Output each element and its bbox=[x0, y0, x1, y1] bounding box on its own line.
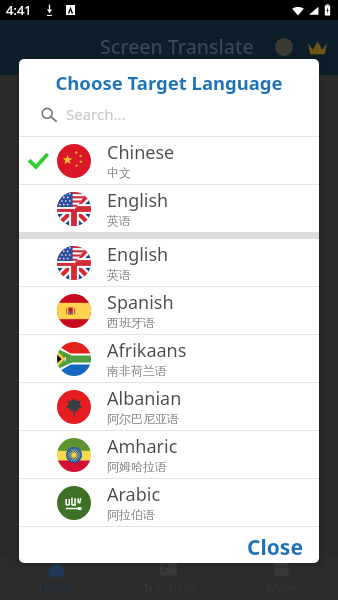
button[interactable]: Search... bbox=[19, 101, 319, 127]
staticText: 4:41 bbox=[6, 1, 32, 19]
button[interactable]: Chinese bbox=[19, 137, 319, 184]
button[interactable]: Home bbox=[0, 556, 112, 600]
staticText: Albanian bbox=[107, 386, 182, 411]
staticText: Home bbox=[39, 580, 74, 596]
staticText: 阿尔巴尼亚语 bbox=[107, 411, 179, 426]
button[interactable]: Help bbox=[267, 30, 301, 64]
staticText: Arabic bbox=[107, 482, 161, 507]
button[interactable]: More bbox=[225, 556, 338, 600]
staticText: 西班牙语 bbox=[107, 315, 155, 330]
staticText: 中文 bbox=[107, 165, 131, 180]
button[interactable]: Spanish bbox=[19, 287, 319, 334]
staticText: Screen Translate bbox=[100, 33, 254, 60]
staticText: Close bbox=[247, 533, 303, 557]
staticText: Spanish bbox=[107, 290, 174, 315]
button[interactable]: English bbox=[19, 185, 319, 232]
button[interactable]: Premium bbox=[301, 31, 333, 63]
staticText: Afrikaans bbox=[107, 338, 187, 363]
staticText: Amharic bbox=[107, 434, 178, 459]
staticText: English bbox=[107, 188, 169, 213]
button[interactable]: Close bbox=[231, 527, 319, 563]
staticText: 英语 bbox=[107, 267, 131, 282]
button[interactable]: Translate bbox=[112, 556, 225, 600]
button[interactable]: Albanian bbox=[19, 383, 319, 430]
staticText: Chinese bbox=[107, 140, 175, 165]
staticText: Choose Target Language bbox=[19, 70, 319, 95]
staticText: 英语 bbox=[107, 213, 131, 228]
staticText: 阿姆哈拉语 bbox=[107, 459, 167, 474]
button[interactable]: Amharic bbox=[19, 431, 319, 478]
button[interactable]: English bbox=[19, 239, 319, 286]
button[interactable]: Afrikaans bbox=[19, 335, 319, 382]
staticText: Search... bbox=[66, 104, 126, 124]
button[interactable]: Arabic bbox=[19, 479, 319, 526]
staticText: English bbox=[107, 242, 169, 267]
staticText: 阿拉伯语 bbox=[107, 507, 155, 522]
staticText: 南非荷兰语 bbox=[107, 363, 167, 378]
